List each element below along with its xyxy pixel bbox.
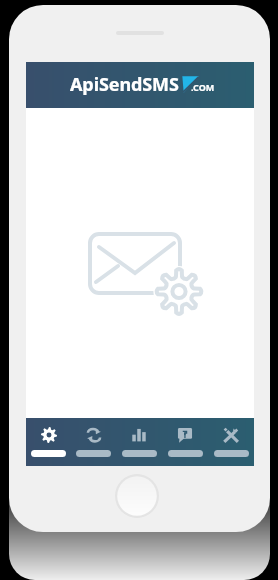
button[interactable]: Sync xyxy=(71,419,116,465)
staticText: .COM xyxy=(191,81,215,93)
button[interactable]: Tools xyxy=(208,419,254,465)
staticText: ApiSendSMS xyxy=(70,72,179,97)
button[interactable]: Settings xyxy=(26,419,71,465)
button[interactable]: Statistics xyxy=(116,419,162,465)
button[interactable]: Help xyxy=(162,419,208,465)
